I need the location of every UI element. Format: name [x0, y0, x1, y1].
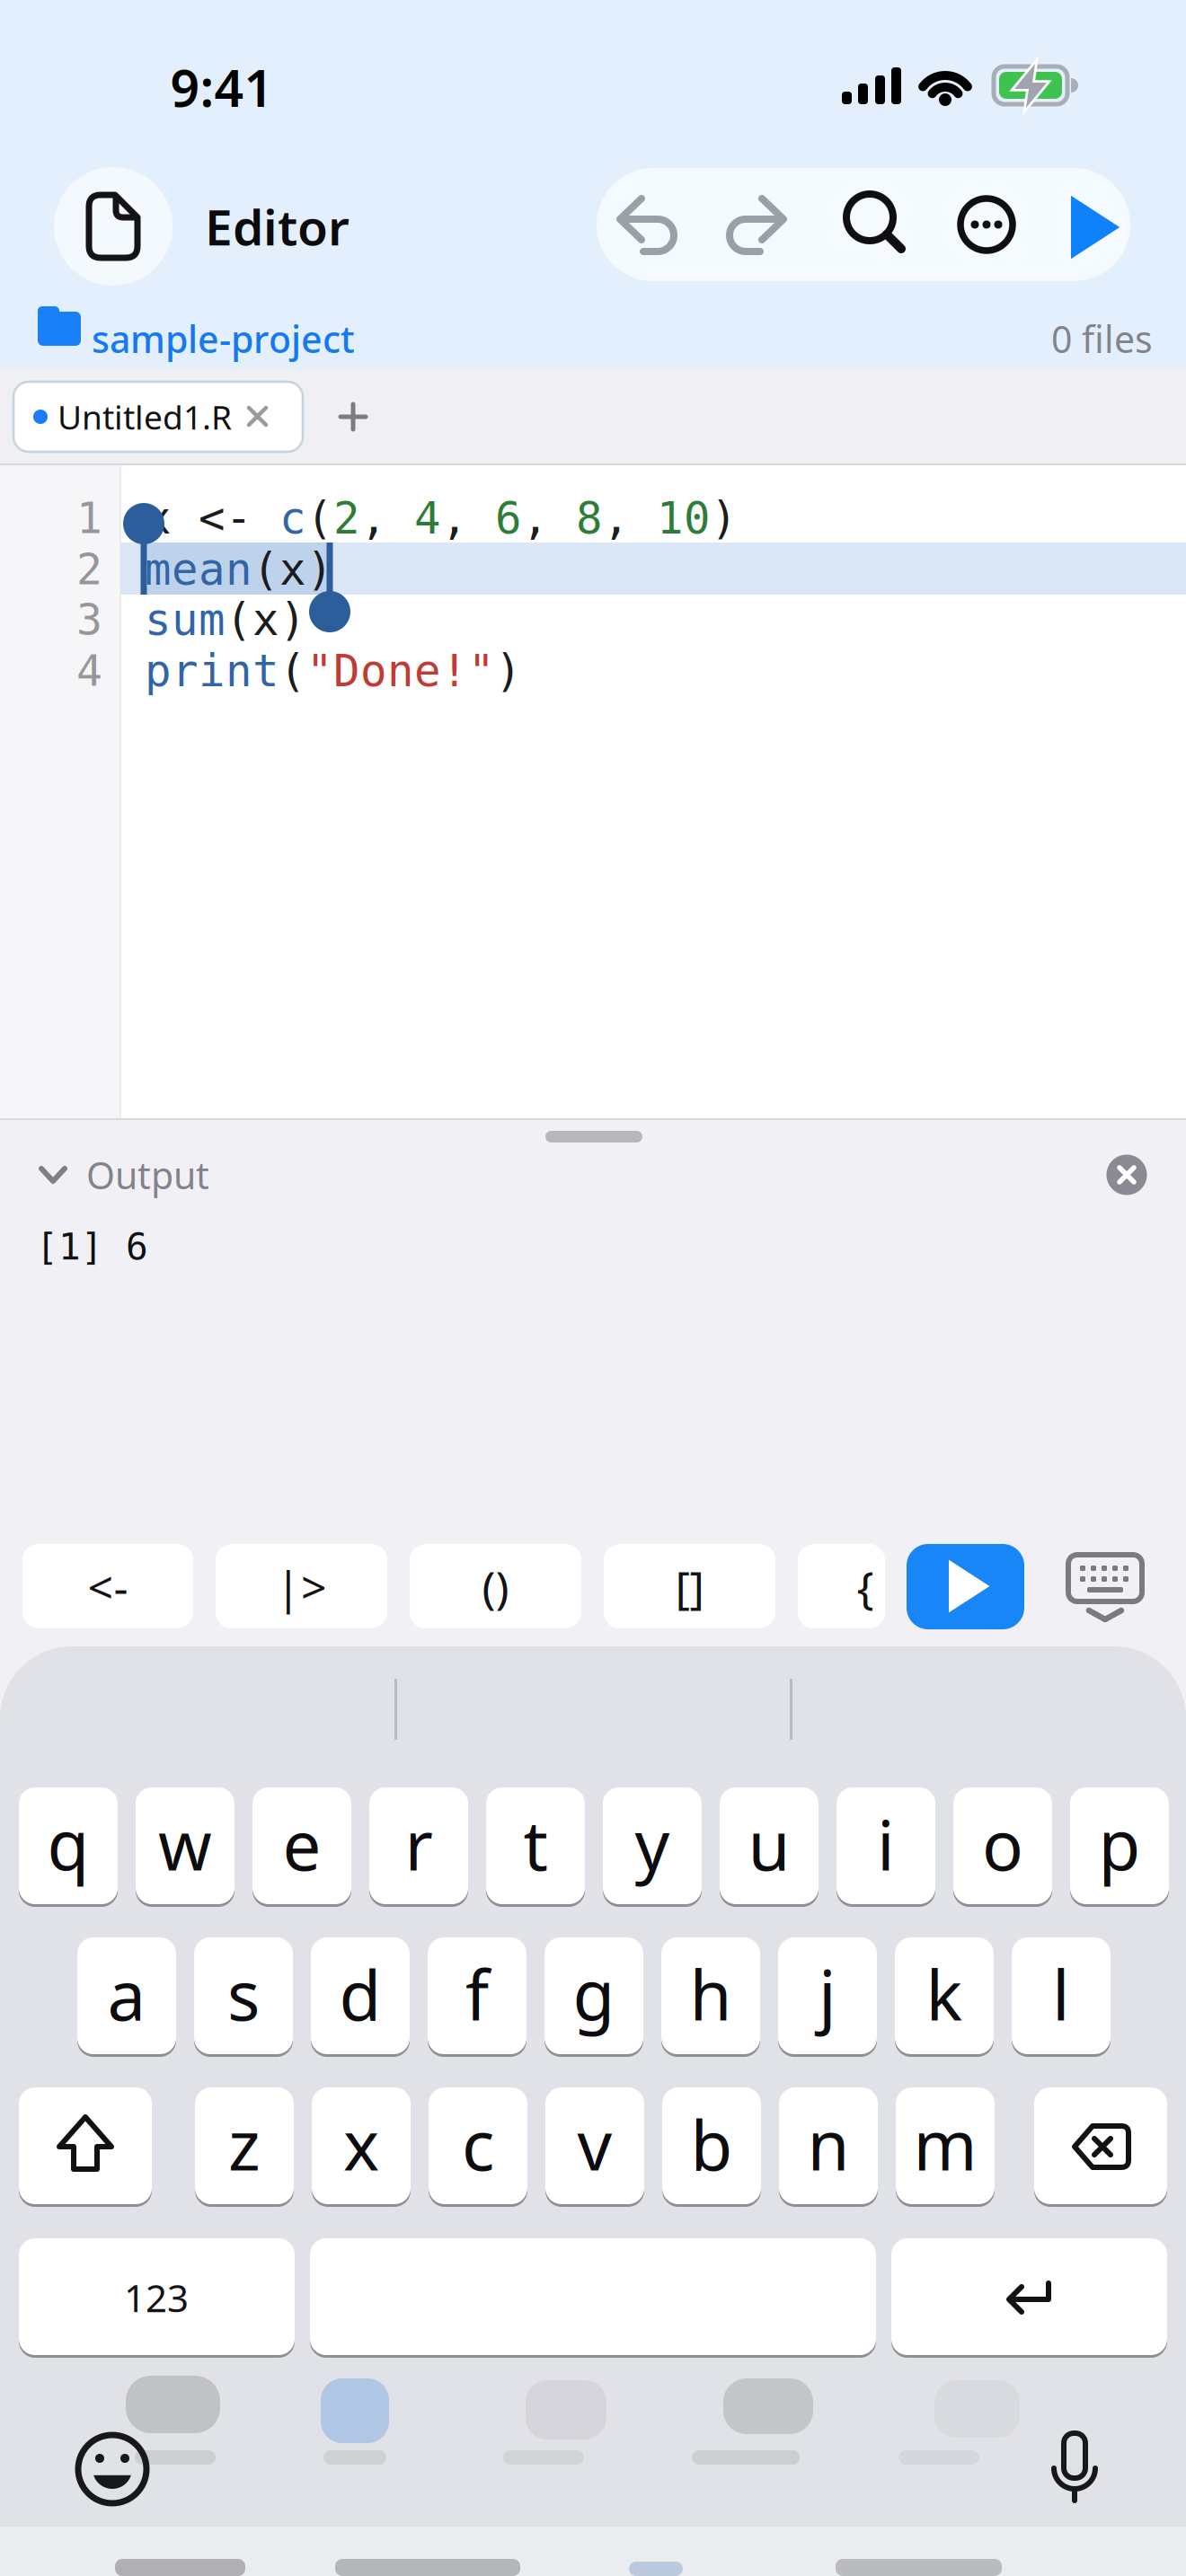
- staticText: (: [306, 493, 333, 544]
- staticText: r: [405, 1797, 433, 1890]
- staticText: e: [283, 1797, 321, 1890]
- button[interactable]: [907, 1544, 1024, 1629]
- button[interactable]: t: [486, 1787, 585, 1907]
- button[interactable]: j: [778, 1937, 877, 2057]
- staticText: Output: [86, 1150, 209, 1200]
- button[interactable]: b: [662, 2087, 761, 2207]
- button[interactable]: [75, 2431, 150, 2507]
- button[interactable]: q: [19, 1787, 118, 1907]
- staticText: g: [573, 1947, 615, 2040]
- staticText: ,: [360, 493, 414, 544]
- staticText: (): [482, 1556, 509, 1617]
- staticText: |>: [276, 1556, 327, 1617]
- staticText: 3: [76, 595, 102, 645]
- staticText: {: [857, 1556, 874, 1617]
- button[interactable]: [1034, 2087, 1167, 2207]
- button[interactable]: [310, 2238, 876, 2358]
- staticText: b: [690, 2097, 733, 2190]
- staticText: 123: [124, 2272, 189, 2323]
- staticText: c: [279, 493, 306, 544]
- staticText: (: [279, 645, 306, 697]
- button[interactable]: r: [369, 1787, 468, 1907]
- staticText: x: [343, 2097, 379, 2190]
- button[interactable]: g: [544, 1937, 643, 2057]
- staticText: (x): [226, 594, 306, 645]
- staticText: mean: [145, 544, 252, 595]
- button[interactable]: [1053, 184, 1134, 270]
- button[interactable]: k: [895, 1937, 994, 2057]
- staticText: sum: [145, 594, 226, 645]
- staticText: 0 files: [1051, 314, 1153, 364]
- staticText: 6: [495, 493, 522, 544]
- staticText: y: [635, 1797, 670, 1890]
- button[interactable]: [943, 181, 1030, 268]
- staticText: 4: [414, 493, 441, 544]
- button[interactable]: [54, 167, 173, 286]
- button[interactable]: [332, 395, 375, 438]
- button[interactable]: z: [195, 2087, 294, 2207]
- button[interactable]: e: [252, 1787, 351, 1907]
- staticText: ): [495, 645, 522, 697]
- staticText: z: [228, 2097, 261, 2190]
- button[interactable]: [717, 181, 803, 268]
- button[interactable]: [1106, 1154, 1147, 1195]
- button[interactable]: w: [136, 1787, 235, 1907]
- staticText: sample-project: [92, 314, 355, 364]
- button[interactable]: v: [545, 2087, 644, 2207]
- button[interactable]: f: [428, 1937, 527, 2057]
- staticText: 1: [76, 493, 102, 543]
- staticText: 2: [333, 493, 360, 544]
- staticText: 9:41: [170, 52, 274, 122]
- staticText: Untitled1.R: [58, 394, 232, 439]
- button[interactable]: (): [410, 1544, 581, 1628]
- button[interactable]: h: [661, 1937, 760, 2057]
- button[interactable]: o: [953, 1787, 1052, 1907]
- staticText: j: [819, 1947, 836, 2040]
- button[interactable]: [827, 179, 913, 265]
- staticText: v: [577, 2097, 612, 2190]
- button[interactable]: sample-project: [27, 306, 341, 357]
- staticText: s: [227, 1947, 260, 2040]
- staticText: <-: [199, 493, 279, 544]
- staticText: l: [1052, 1947, 1070, 2040]
- staticText: <-: [88, 1556, 128, 1617]
- button[interactable]: Output: [27, 1151, 252, 1198]
- button[interactable]: y: [603, 1787, 702, 1907]
- button[interactable]: a: [77, 1937, 176, 2057]
- button[interactable]: c: [429, 2087, 527, 2207]
- button[interactable]: i: [836, 1787, 935, 1907]
- button[interactable]: <-: [22, 1544, 193, 1628]
- button[interactable]: s: [194, 1937, 293, 2057]
- staticText: []: [675, 1556, 704, 1617]
- button[interactable]: n: [779, 2087, 878, 2207]
- button[interactable]: []: [604, 1544, 775, 1628]
- staticText: i: [877, 1797, 895, 1890]
- button[interactable]: |>: [216, 1544, 387, 1628]
- button[interactable]: {: [798, 1544, 885, 1628]
- staticText: a: [107, 1947, 146, 2040]
- button[interactable]: 123: [19, 2238, 295, 2358]
- button[interactable]: [19, 2087, 152, 2207]
- staticText: o: [982, 1797, 1023, 1890]
- staticText: k: [926, 1947, 963, 2040]
- staticText: ,: [522, 493, 576, 544]
- staticText: 2: [76, 544, 102, 595]
- button[interactable]: p: [1070, 1787, 1169, 1907]
- button[interactable]: [607, 181, 694, 268]
- button[interactable]: [535, 1125, 653, 1150]
- button[interactable]: m: [896, 2087, 995, 2207]
- button[interactable]: u: [720, 1787, 819, 1907]
- button[interactable]: Untitled1.R: [13, 382, 303, 452]
- staticText: f: [465, 1947, 489, 2040]
- staticText: ,: [603, 493, 657, 544]
- staticText: q: [47, 1797, 89, 1890]
- button[interactable]: [1065, 1549, 1147, 1627]
- button[interactable]: x: [312, 2087, 411, 2207]
- button[interactable]: [1035, 2428, 1114, 2505]
- button[interactable]: l: [1012, 1937, 1111, 2057]
- button[interactable]: [891, 2238, 1167, 2358]
- button[interactable]: d: [311, 1937, 410, 2057]
- staticText: 10: [657, 493, 711, 544]
- staticText: x: [145, 493, 199, 544]
- staticText: (x): [252, 544, 333, 595]
